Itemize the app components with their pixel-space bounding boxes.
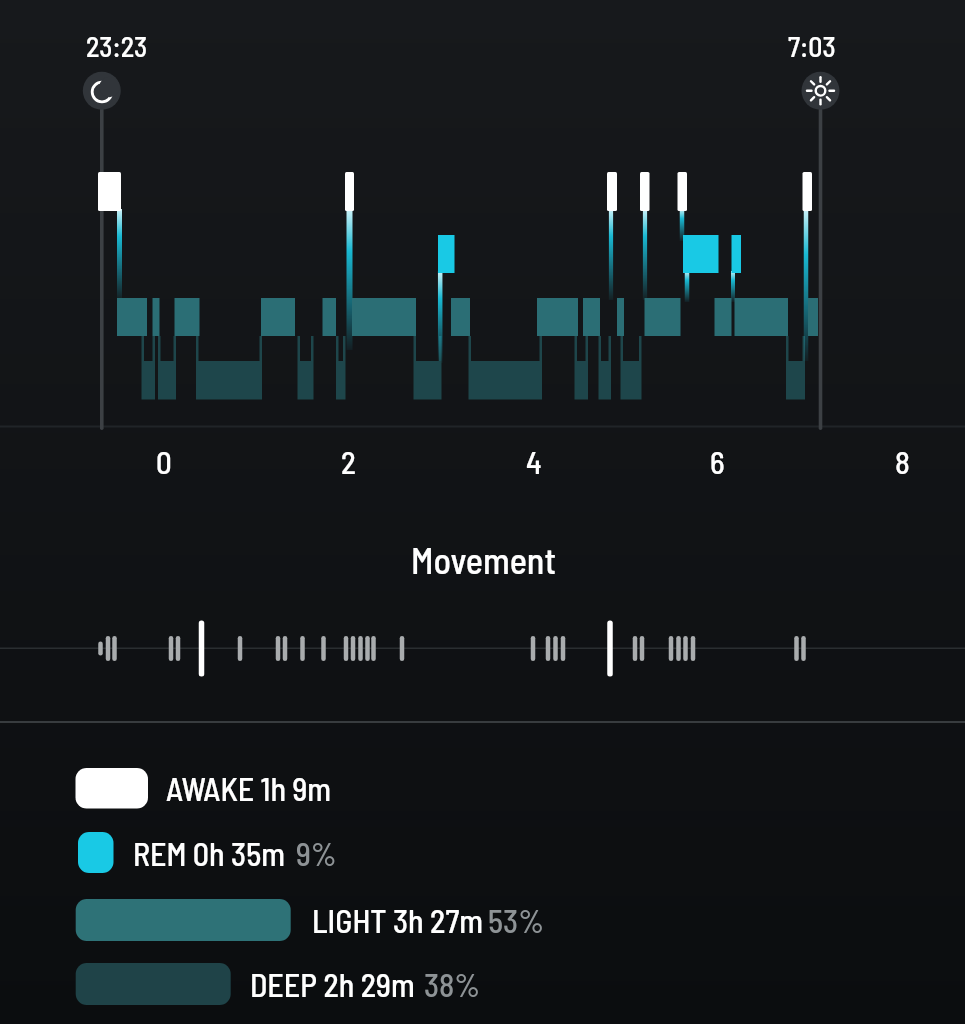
staticText: 38% xyxy=(424,965,481,1003)
staticText: 7:03 xyxy=(788,29,836,63)
button[interactable] xyxy=(801,71,841,111)
staticText: 0 xyxy=(156,443,172,480)
staticText: DEEP 2h 29m xyxy=(250,965,415,1003)
staticText: 8 xyxy=(895,443,910,480)
staticText: 4 xyxy=(526,443,542,480)
staticText: Movement xyxy=(411,538,556,581)
button[interactable] xyxy=(70,894,540,946)
staticText: 2 xyxy=(341,443,356,480)
button[interactable] xyxy=(70,763,470,813)
staticText: 9% xyxy=(296,834,337,872)
staticText: AWAKE 1h 9m xyxy=(166,769,332,807)
button[interactable] xyxy=(82,71,122,111)
button[interactable] xyxy=(70,828,470,878)
staticText: 23:23 xyxy=(86,29,148,63)
staticText: 53% xyxy=(488,901,545,939)
staticText: LIGHT 3h 27m xyxy=(312,901,483,939)
staticText: 6 xyxy=(710,443,725,480)
staticText: REM 0h 35m xyxy=(133,834,285,872)
button[interactable] xyxy=(70,958,480,1010)
